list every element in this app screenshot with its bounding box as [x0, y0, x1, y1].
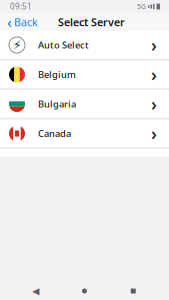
staticText: ›	[151, 92, 157, 115]
button[interactable]: Home	[71, 282, 97, 300]
staticText: Select Server	[58, 15, 125, 29]
staticText: ‹	[7, 12, 12, 32]
staticText: Bulgaria	[38, 98, 76, 110]
staticText: Back	[14, 15, 38, 29]
button[interactable]: Czech Republic	[0, 149, 169, 177]
staticText: ◀	[32, 286, 39, 296]
staticText: ›	[151, 122, 157, 145]
button[interactable]: Belgium	[0, 60, 169, 88]
staticText: 5G	[137, 2, 146, 11]
button[interactable]: Back	[23, 282, 49, 300]
button[interactable]: ‹	[0, 9, 45, 35]
button[interactable]: Germany	[0, 267, 169, 295]
staticText: Belgium	[38, 68, 76, 81]
button[interactable]: ⚡︎	[0, 31, 169, 59]
button[interactable]: Recent apps	[120, 282, 146, 300]
staticText: ›	[151, 33, 157, 56]
staticText: Canada	[38, 127, 71, 140]
staticText: ›	[151, 63, 157, 86]
button[interactable]: Bulgaria	[0, 90, 169, 118]
staticText: ›	[151, 151, 157, 174]
staticText: Auto Select	[38, 39, 89, 51]
button[interactable]: Canada	[0, 119, 169, 147]
staticText: ⚡︎	[13, 38, 21, 52]
staticText: 09:51	[10, 1, 32, 12]
